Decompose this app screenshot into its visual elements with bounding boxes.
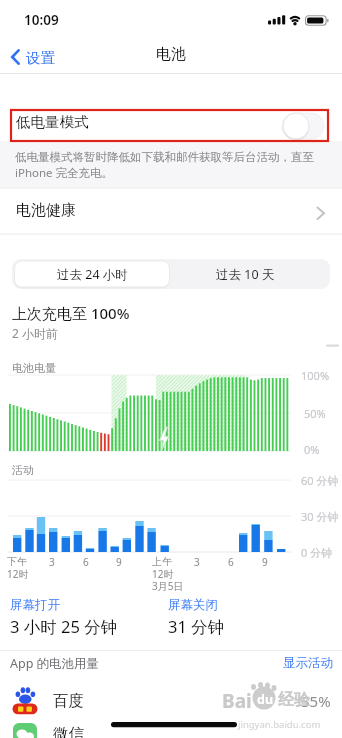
staticText: 3月5日 <box>152 579 184 593</box>
staticText: 3 <box>194 555 200 569</box>
staticText: 100% <box>301 368 330 383</box>
button[interactable] <box>278 652 338 674</box>
staticText: 2 小时前 <box>12 325 58 341</box>
staticText: 9 <box>116 555 122 569</box>
button[interactable] <box>0 678 342 717</box>
staticText: 微信 <box>53 724 84 738</box>
staticText: 电池 <box>156 45 186 64</box>
staticText: 电池电量 <box>12 361 56 375</box>
staticText: 低电量模式 <box>16 113 89 131</box>
staticText: 35% <box>301 691 331 711</box>
staticText: 经验 <box>278 690 310 710</box>
staticText: 屏幕打开 <box>10 597 60 613</box>
staticText: 过去 10 天 <box>216 266 275 283</box>
staticText: 显示活动 <box>283 655 333 671</box>
staticText: 3 小时 25 分钟 <box>10 615 118 638</box>
staticText: 0% <box>304 442 320 457</box>
staticText: 31 分钟 <box>168 615 225 638</box>
staticText: jingyan.baidu.com <box>238 718 321 731</box>
staticText: 6 <box>83 555 89 569</box>
staticText: 电池健康 <box>16 201 76 220</box>
staticText: 上午 <box>152 555 172 568</box>
staticText: 3 <box>49 555 55 569</box>
staticText: App 的电池用量 <box>10 655 100 672</box>
staticText: du <box>257 691 274 708</box>
staticText: 低电量模式将暂时降低如下载和邮件获取等后台活动，直至 <box>15 150 314 164</box>
staticText: Bai <box>222 688 252 714</box>
staticText: 50% <box>304 406 326 421</box>
staticText: 60 分钟 <box>301 473 339 488</box>
staticText: 9 <box>262 555 268 569</box>
button[interactable] <box>0 717 342 738</box>
button[interactable] <box>171 259 330 289</box>
button[interactable] <box>12 259 171 289</box>
button[interactable] <box>6 44 76 70</box>
staticText: 下午 <box>7 555 27 568</box>
staticText: 上次充电至 100% <box>12 303 130 323</box>
staticText: 10:09 <box>24 11 59 29</box>
staticText: 12时 <box>7 567 29 581</box>
staticText: 30 分钟 <box>301 509 339 524</box>
staticText: 12时 <box>152 567 174 581</box>
staticText: 设置 <box>26 49 55 67</box>
staticText: 活动 <box>12 463 34 477</box>
staticText: 6 <box>228 555 234 569</box>
staticText: iPhone 完全充电。 <box>15 165 114 181</box>
button[interactable] <box>0 188 342 234</box>
staticText: 过去 24 小时 <box>57 266 128 283</box>
button[interactable] <box>0 74 342 141</box>
staticText: 0 分钟 <box>301 545 333 560</box>
staticText: 百度 <box>53 691 84 711</box>
staticText: 屏幕关闭 <box>168 597 218 613</box>
